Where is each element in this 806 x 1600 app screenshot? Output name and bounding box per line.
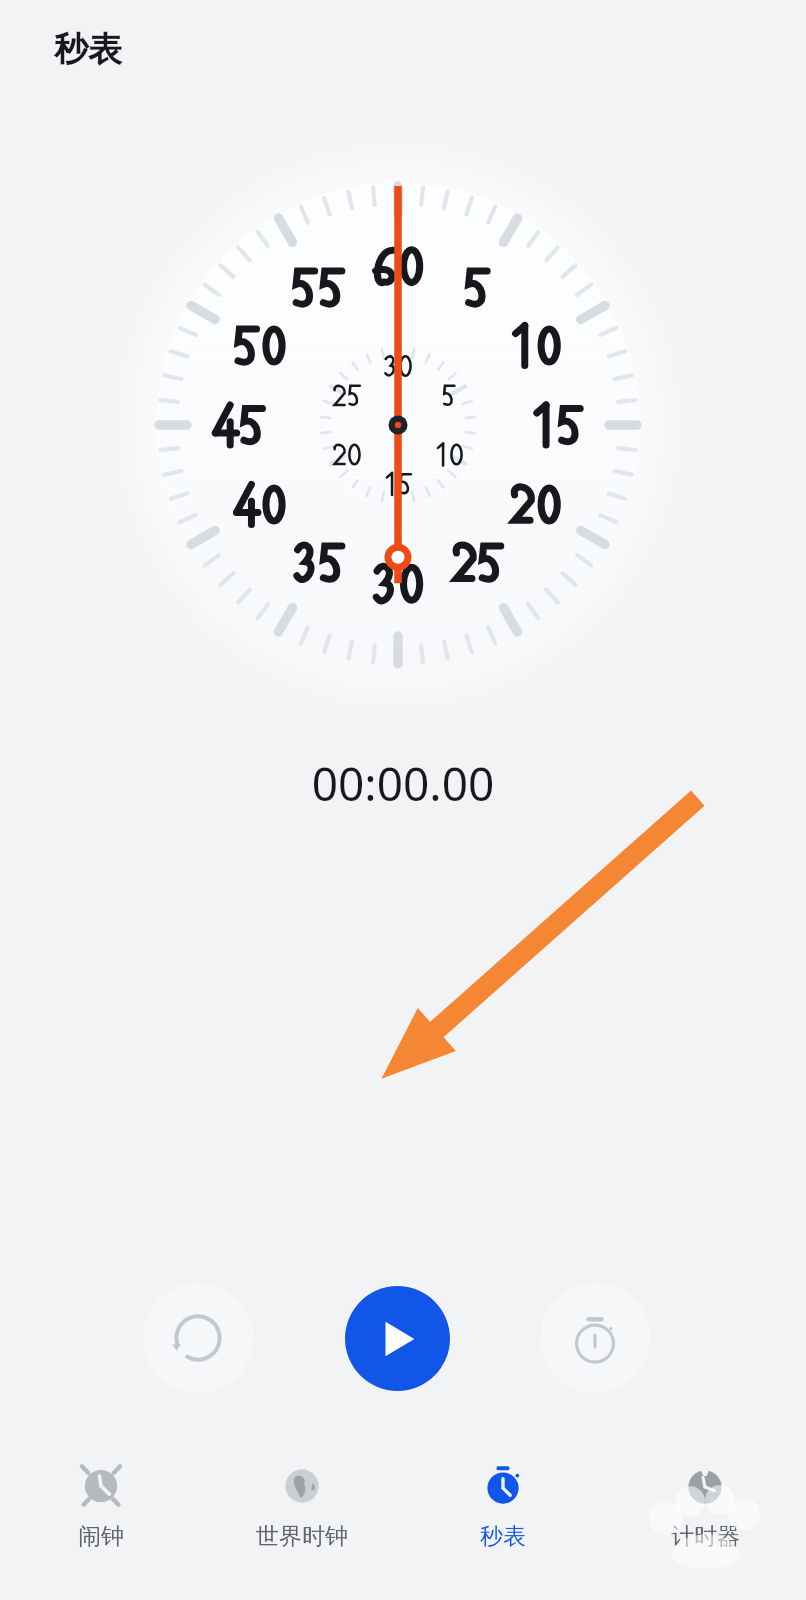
staticText: 闹钟 xyxy=(78,1522,124,1551)
staticText: 秒表 xyxy=(54,28,122,71)
staticText: 00:00.00 xyxy=(0,752,806,815)
staticText: 世界时钟 xyxy=(256,1522,348,1551)
staticText: 计时器 xyxy=(671,1522,740,1551)
button[interactable]: Start xyxy=(345,1286,450,1391)
button[interactable]: Reset xyxy=(143,1283,253,1393)
button[interactable]: 秒表 xyxy=(402,1448,604,1551)
button[interactable]: 闹钟 xyxy=(0,1448,201,1551)
button[interactable]: 世界时钟 xyxy=(201,1448,402,1551)
button[interactable]: 计时器 xyxy=(604,1448,806,1551)
staticText: 秒表 xyxy=(480,1522,526,1551)
button[interactable]: Lap xyxy=(540,1283,650,1393)
